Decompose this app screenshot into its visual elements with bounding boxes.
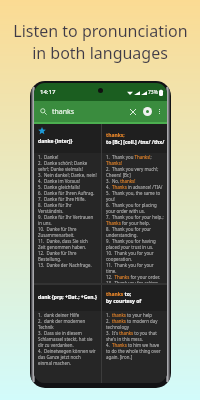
button[interactable]: Voice search xyxy=(143,107,152,116)
button[interactable]: Clear xyxy=(128,107,138,117)
staticText: 73% xyxy=(148,89,158,96)
staticText: 1. thanks to your help 2. thanks to mode… xyxy=(106,312,161,360)
staticText: 1. Danke! 2. Danke schön!; Danke sehr!; … xyxy=(38,154,97,268)
button[interactable]: More options xyxy=(156,106,163,117)
staticText: thanks to; xyxy=(106,291,132,298)
other: Search xyxy=(40,108,47,115)
staticText: to [Br.] [coll.] /tnx/ /thx/ xyxy=(106,139,165,146)
button[interactable]: danke {interj} xyxy=(34,124,167,153)
staticText: 1. dank deiner Hilfe 2. dank der moderne… xyxy=(38,312,96,366)
staticText: danke {interj} xyxy=(38,138,73,145)
staticText: dank {prp; +Dat.; +Gen.} xyxy=(38,294,97,301)
staticText: in both languages xyxy=(32,42,168,64)
staticText: thanks xyxy=(52,107,75,117)
button[interactable]: Search xyxy=(34,101,167,122)
staticText: 14:17 xyxy=(40,88,56,96)
staticText: by courtesy of xyxy=(106,298,142,305)
staticText: thanks; xyxy=(106,132,125,139)
button[interactable]: dank {prp; +Dat.; +Gen.} xyxy=(34,285,167,311)
staticText: 1. Thank you Thanks!; Thanks! 2. Thank y… xyxy=(106,154,164,283)
staticText: Listen to pronunciation xyxy=(13,20,188,42)
